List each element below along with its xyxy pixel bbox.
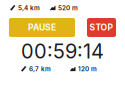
- staticText: 120 m: [78, 65, 97, 73]
- staticText: 6,7 km: [29, 65, 51, 73]
- staticText: 00:59:14: [21, 39, 104, 63]
- button[interactable]: STOP: [87, 18, 116, 37]
- staticText: STOP: [89, 22, 113, 33]
- staticText: PAUSE: [28, 22, 56, 33]
- staticText: 5,4 km: [18, 4, 40, 12]
- button[interactable]: PAUSE: [9, 18, 75, 37]
- staticText: 520 m: [58, 4, 78, 12]
